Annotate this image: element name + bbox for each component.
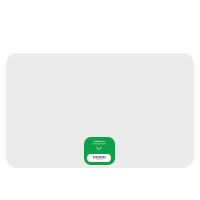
button[interactable]: Schneider Electric app icon: [84, 137, 115, 165]
